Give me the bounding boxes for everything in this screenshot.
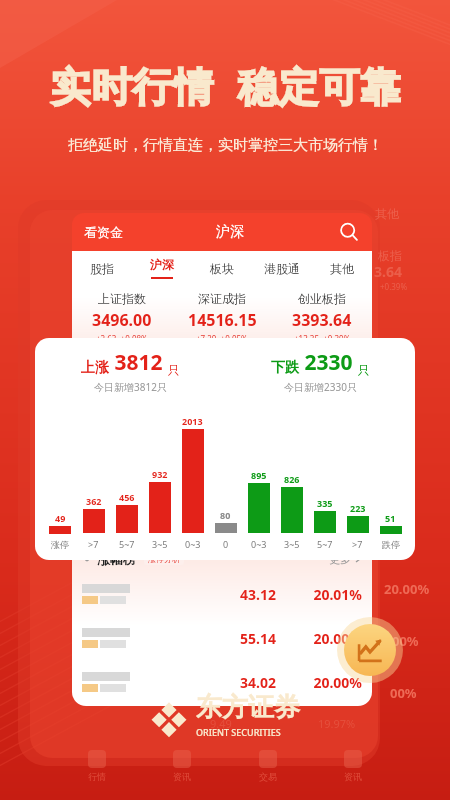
staticText: 00% <box>390 684 417 702</box>
staticText: +0.39% <box>380 281 408 292</box>
button[interactable]: 沪深 <box>132 251 192 285</box>
staticText: 沪深 <box>150 257 174 272</box>
staticText: 362 <box>86 495 102 507</box>
staticText: 下跌 <box>271 359 299 377</box>
staticText: 932 <box>152 468 168 480</box>
button[interactable]: 行情走势 <box>344 624 396 676</box>
staticText: 深证成指 <box>198 291 246 306</box>
staticText: 5~7 <box>317 538 333 550</box>
staticText: 223 <box>350 502 366 514</box>
button[interactable]: 43.12 <box>72 572 372 616</box>
staticText: 实时行情 <box>50 62 214 112</box>
staticText: 20.00% <box>296 629 362 648</box>
button[interactable]: 港股通 <box>252 251 312 285</box>
staticText: 沪深 <box>216 223 244 241</box>
button[interactable]: 看资金 <box>84 224 123 240</box>
button[interactable]: 板块 <box>192 251 252 285</box>
staticText: >7 <box>352 538 363 550</box>
staticText: 20.01% <box>296 585 362 604</box>
staticText: 0~3 <box>185 538 201 550</box>
staticText: 涨停 <box>51 539 69 550</box>
staticText: +13.35 +0.39% <box>294 333 351 343</box>
staticText: 上涨 <box>81 359 109 377</box>
staticText: 3812 <box>109 348 168 377</box>
staticText: 创业板指 <box>298 291 346 306</box>
staticText: 3~5 <box>284 538 300 550</box>
staticText: 涨幅榜 <box>97 551 136 567</box>
staticText: 55.14 <box>216 629 276 648</box>
staticText: 0 <box>223 538 229 550</box>
staticText: 9.49 <box>210 716 232 731</box>
staticText: 51 <box>385 512 396 524</box>
staticText: 456 <box>119 491 135 503</box>
staticText: 稳定可靠 <box>237 62 401 112</box>
staticText: 今日新增2330只 <box>284 380 357 394</box>
staticText: 资讯 <box>173 771 191 782</box>
staticText: 14516.15 <box>188 309 257 331</box>
staticText: >7 <box>88 538 99 550</box>
staticText: 20.00% <box>384 580 430 598</box>
button[interactable]: 涨停分析 <box>148 554 180 564</box>
staticText: 49 <box>55 512 66 524</box>
staticText: 股指 <box>90 261 114 276</box>
button[interactable]: 搜索 <box>338 221 360 243</box>
staticText: 0~3 <box>251 538 267 550</box>
button[interactable]: 股指 <box>72 251 132 285</box>
staticText: 其他 <box>375 206 399 221</box>
staticText: 港股通 <box>264 261 300 276</box>
staticText: 更多 <box>329 552 351 566</box>
staticText: 板块 <box>210 261 234 276</box>
staticText: 895 <box>251 469 267 481</box>
button[interactable]: 34.02 <box>72 660 372 704</box>
staticText: 80 <box>220 509 231 521</box>
staticText: ORIENT SECURITIES <box>196 726 281 738</box>
staticText: 东方证券 <box>196 691 300 724</box>
staticText: 只 <box>168 362 180 377</box>
button[interactable]: 更多 <box>329 552 362 566</box>
staticText: 拒绝延时，行情直连，实时掌控三大市场行情！ <box>68 136 383 155</box>
staticText: +2.63 +0.08% <box>96 333 148 343</box>
staticText: 板指 <box>378 248 402 263</box>
staticText: 335 <box>317 497 333 509</box>
staticText: 跌停 <box>382 539 400 550</box>
staticText: 20.00% <box>296 673 362 692</box>
staticText: 34.02 <box>216 673 276 692</box>
staticText: 43.12 <box>216 585 276 604</box>
button[interactable]: 其他 <box>312 251 372 285</box>
staticText: 2330 <box>299 348 358 377</box>
staticText: 3496.00 <box>92 309 152 331</box>
staticText: 2013 <box>182 415 203 427</box>
button[interactable]: 55.14 <box>72 616 372 660</box>
staticText: 今日新增3812只 <box>94 380 167 394</box>
staticText: 涨停分析 <box>148 554 180 564</box>
staticText: 交易 <box>259 771 277 782</box>
staticText: 19.97% <box>318 716 356 731</box>
staticText: 00% <box>392 632 419 650</box>
staticText: 5~7 <box>119 538 135 550</box>
staticText <box>214 62 237 116</box>
staticText: 只 <box>358 362 370 377</box>
staticText: 3~5 <box>152 538 168 550</box>
staticText: 3393.64 <box>292 309 352 331</box>
staticText: 3.64 <box>374 262 402 281</box>
staticText: +7.29 +0.05% <box>196 333 248 343</box>
staticText: 826 <box>284 473 300 485</box>
staticText: 其他 <box>330 261 354 276</box>
staticText: 资讯 <box>344 771 362 782</box>
staticText: 上证指数 <box>98 291 146 306</box>
staticText: 行情 <box>88 771 106 782</box>
